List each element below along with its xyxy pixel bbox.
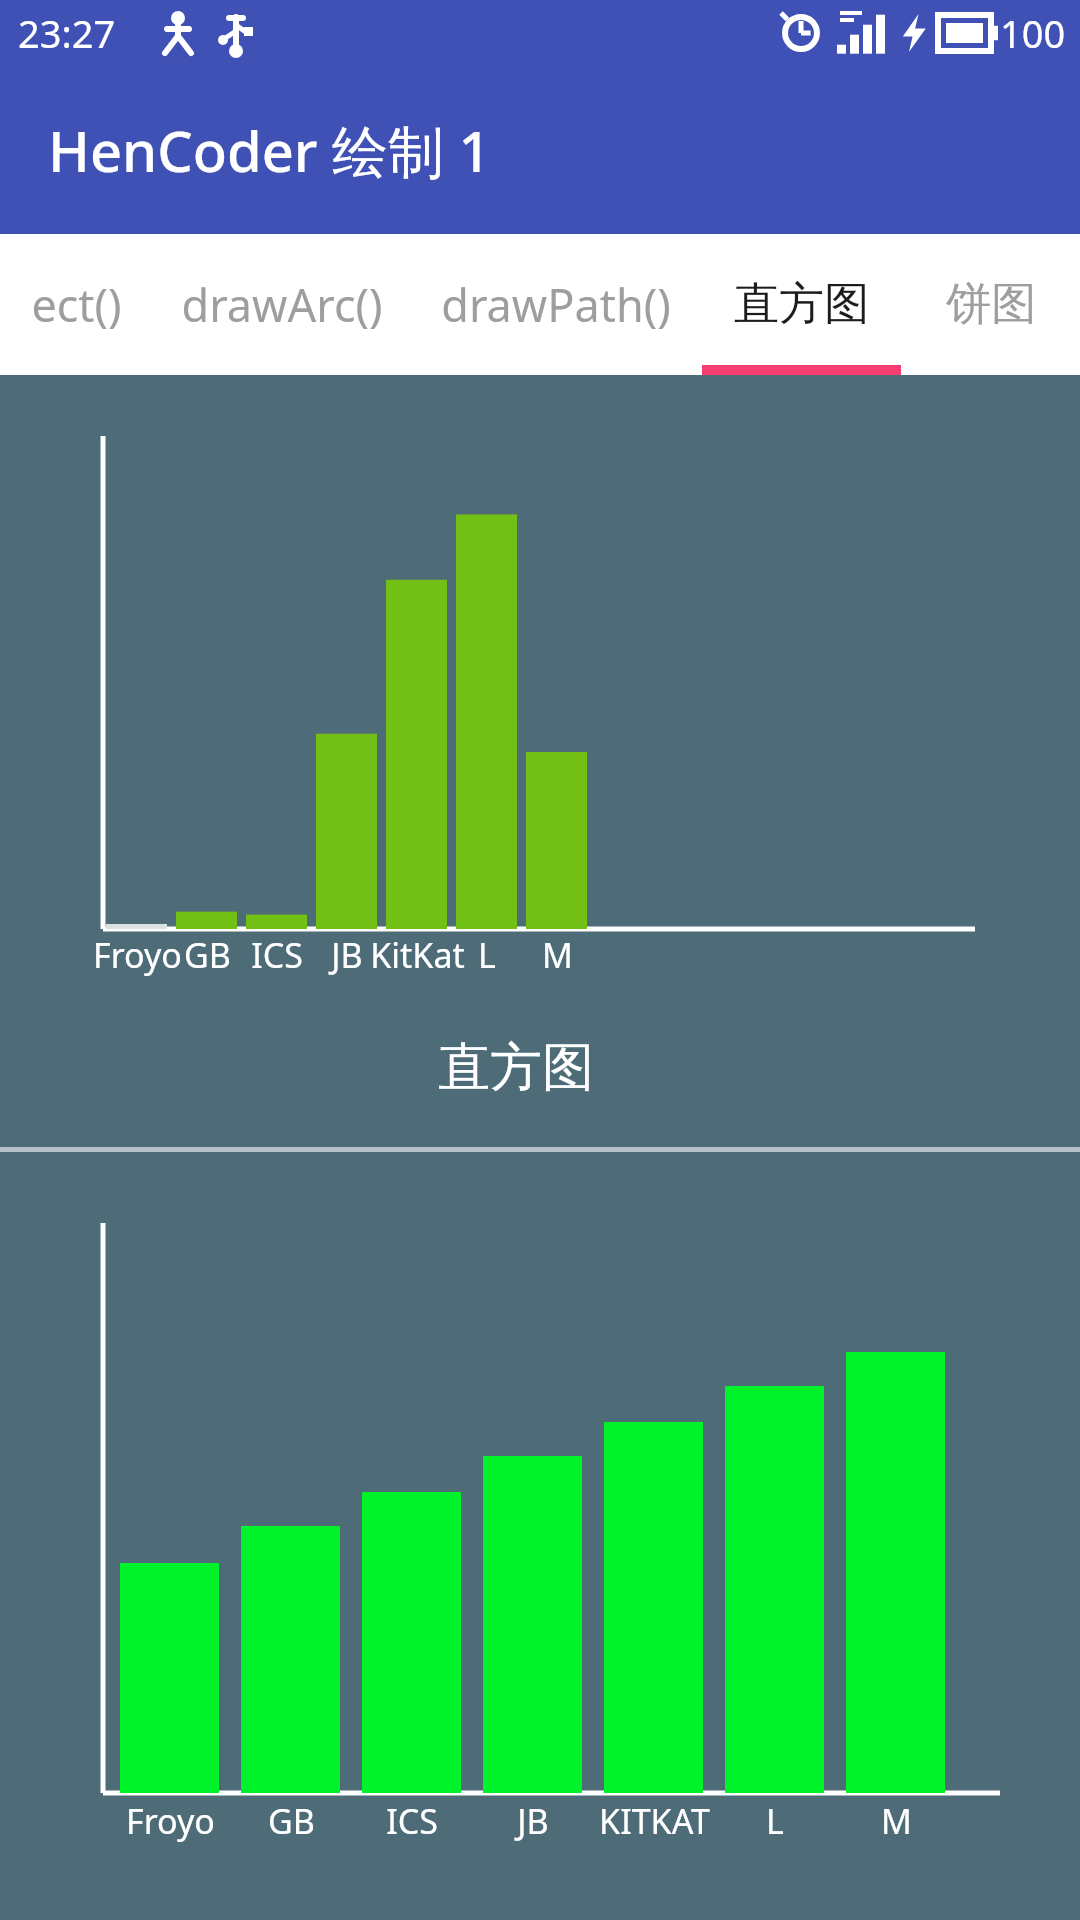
staticText: Froyo — [126, 1798, 215, 1844]
staticText: drawArc() — [181, 274, 383, 335]
button[interactable]: 直方图 — [702, 234, 901, 375]
staticText: GB — [184, 932, 231, 978]
staticText: ICS — [251, 932, 303, 978]
staticText: JB — [331, 932, 363, 978]
button[interactable]: drawArc() — [153, 234, 410, 375]
staticText: ICS — [386, 1798, 438, 1844]
staticText: 饼图 — [946, 276, 1036, 333]
staticText: M — [542, 932, 573, 978]
button[interactable]: 饼图 — [901, 234, 1080, 375]
button[interactable]: drawPath() — [410, 234, 702, 375]
staticText: L — [766, 1798, 784, 1844]
staticText: HenCoder 绘制 1 — [48, 112, 491, 188]
other: Status icons — [148, 9, 258, 57]
staticText: JB — [517, 1798, 549, 1844]
staticText: GB — [268, 1798, 315, 1844]
staticText: L — [478, 932, 496, 978]
staticText: 直方图 — [734, 276, 869, 333]
staticText: ect() — [31, 274, 122, 335]
staticText: Froyo — [93, 932, 182, 978]
staticText: KITKAT — [599, 1798, 710, 1844]
staticText: 直方图 — [438, 1035, 594, 1101]
staticText: 23:27 — [18, 7, 116, 59]
button[interactable]: ect() — [0, 234, 153, 375]
staticText: 100 — [1000, 7, 1066, 59]
staticText: KitKat — [370, 932, 465, 978]
staticText: drawPath() — [441, 274, 671, 335]
staticText: M — [881, 1798, 912, 1844]
